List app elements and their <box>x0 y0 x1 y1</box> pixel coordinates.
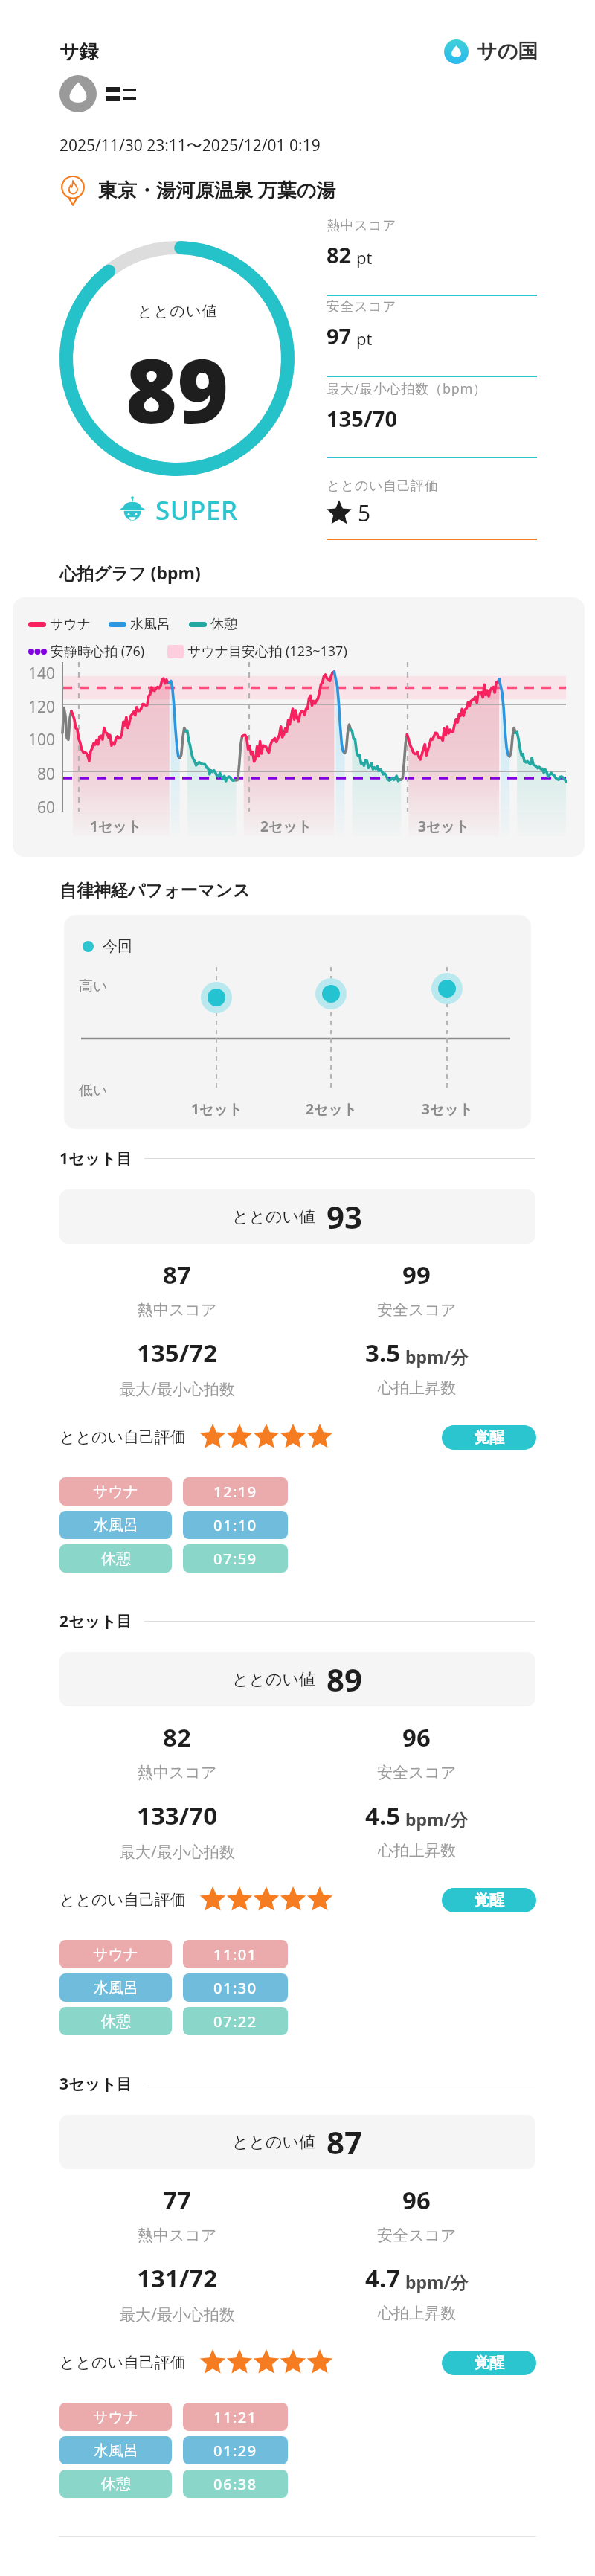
staticText: 自律神経パフォーマンス <box>59 880 251 902</box>
staticText: 心拍上昇数 <box>378 1841 456 1860</box>
button[interactable]: 覚醒 <box>442 1888 536 1912</box>
button[interactable]: サの国 logo <box>444 39 538 64</box>
staticText: 心拍上昇数 <box>378 2304 456 2323</box>
staticText: 1セット <box>90 817 142 836</box>
staticText: 2セット目 <box>59 1610 132 1632</box>
staticText: 安全スコア <box>377 1300 457 1320</box>
staticText: 水風呂 <box>94 1979 138 1997</box>
staticText: 60 <box>37 797 56 818</box>
staticText: 水風呂 <box>130 616 170 633</box>
staticText: 最大/最小心拍数 <box>120 2304 235 2325</box>
staticText: 熱中スコア <box>138 2226 217 2245</box>
staticText: 87 <box>327 2121 363 2163</box>
staticText: 01:30 <box>213 1978 257 1998</box>
staticText: サの国 <box>477 39 538 64</box>
staticText: サウナ <box>93 1945 139 1964</box>
staticText: 休憩 <box>101 2475 131 2493</box>
staticText: サウナ <box>93 1483 139 1501</box>
staticText: 低い <box>79 1082 108 1099</box>
staticText: 心拍グラフ (bpm) <box>59 561 201 584</box>
staticText: 11:01 <box>213 1944 257 1965</box>
staticText: 99 <box>402 1258 431 1291</box>
staticText: ととのい自己評価 <box>327 478 439 495</box>
staticText: 93 <box>327 1195 363 1238</box>
staticText: bpm/分 <box>401 1345 469 1368</box>
staticText: ととのい自己評価 <box>59 1890 186 1909</box>
staticText: サ録 <box>59 39 99 64</box>
staticText: 06:38 <box>213 2474 257 2494</box>
staticText: サウナ <box>50 616 91 633</box>
staticText: 2025/11/30 23:11〜2025/12/01 0:19 <box>59 135 321 156</box>
staticText: 安静時心拍 (76) <box>51 642 145 661</box>
staticText: 3セット <box>418 817 470 836</box>
staticText: 120 <box>28 696 56 718</box>
button[interactable]: Profile <box>59 75 97 112</box>
staticText: 心拍上昇数 <box>378 1378 456 1398</box>
staticText: 熱中スコア <box>327 217 397 234</box>
staticText: pt <box>356 246 373 269</box>
staticText: 89 <box>327 1658 363 1700</box>
staticText: ととのい自己評価 <box>59 2353 186 2372</box>
staticText: 135/72 <box>137 1336 218 1369</box>
staticText: 高い <box>79 977 108 995</box>
staticText: 熱中スコア <box>138 1300 217 1320</box>
staticText: ととのい自己評価 <box>59 1427 186 1447</box>
staticText: 熱中スコア <box>138 1763 217 1782</box>
staticText: bpm/分 <box>401 2270 469 2293</box>
staticText: 140 <box>28 663 56 684</box>
staticText: pt <box>356 327 373 350</box>
staticText: 82 <box>163 1721 191 1754</box>
staticText: サウナ目安心拍 (123~137) <box>187 642 347 661</box>
staticText: 4.5 <box>365 1799 401 1832</box>
staticText: ととのい値 <box>138 302 218 321</box>
staticText: 最大/最小心拍数（bpm） <box>327 379 487 398</box>
staticText: 水風呂 <box>94 1516 138 1535</box>
button[interactable]: 覚醒 <box>442 1425 536 1450</box>
staticText: 安全スコア <box>327 298 397 315</box>
staticText: 100 <box>28 729 56 751</box>
staticText: 覚醒 <box>475 2354 504 2372</box>
staticText: 07:22 <box>213 2011 257 2031</box>
staticText: 133/70 <box>137 1799 218 1832</box>
staticText: 89 <box>126 330 229 449</box>
staticText: ととのい値 <box>232 1669 316 1690</box>
staticText: ととのい値 <box>232 1207 316 1227</box>
staticText: 1セット目 <box>59 1148 132 1169</box>
staticText: 77 <box>163 2183 191 2217</box>
staticText: 2セット <box>306 1099 358 1119</box>
staticText: 01:10 <box>213 1515 257 1535</box>
staticText: 80 <box>37 763 56 785</box>
staticText: 休憩 <box>210 616 237 633</box>
staticText: 2セット <box>260 817 312 836</box>
staticText: 07:59 <box>213 1549 257 1569</box>
staticText: 3セット <box>422 1099 474 1119</box>
staticText: 水風呂 <box>94 2441 138 2460</box>
staticText: 135/70 <box>327 404 397 433</box>
staticText: 覚醒 <box>475 1428 504 1447</box>
staticText: 休憩 <box>101 2012 131 2031</box>
staticText: 96 <box>402 1721 431 1754</box>
staticText: 今回 <box>103 937 132 956</box>
staticText: SUPER <box>155 492 238 528</box>
staticText: 4.7 <box>365 2261 401 2295</box>
staticText: 覚醒 <box>475 1891 504 1909</box>
staticText: 3.5 <box>365 1336 401 1369</box>
staticText: 131/72 <box>137 2261 218 2295</box>
staticText: 82 <box>327 240 352 269</box>
staticText: 5 <box>358 498 371 528</box>
staticText: 最大/最小心拍数 <box>120 1841 235 1863</box>
staticText: 1セット <box>191 1099 243 1119</box>
staticText: 11:21 <box>213 2407 257 2427</box>
button[interactable]: 覚醒 <box>442 2351 536 2375</box>
staticText: 最大/最小心拍数 <box>120 1378 235 1400</box>
staticText: サウナ <box>93 2408 139 2426</box>
staticText: 休憩 <box>101 1549 131 1568</box>
staticText: bpm/分 <box>401 1808 469 1831</box>
staticText: 96 <box>402 2183 431 2217</box>
staticText: 12:19 <box>213 1482 257 1502</box>
staticText: 3セット目 <box>59 2073 132 2095</box>
staticText: 安全スコア <box>377 1763 457 1782</box>
staticText: 87 <box>163 1258 191 1291</box>
staticText: ととのい値 <box>232 2132 316 2153</box>
staticText: 01:29 <box>213 2441 257 2461</box>
